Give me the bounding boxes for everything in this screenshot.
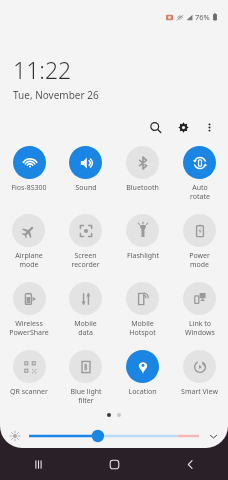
button[interactable]: Airplane mode	[12, 212, 45, 269]
staticText: 76%	[195, 12, 210, 22]
button[interactable]: Location	[126, 348, 159, 397]
button[interactable]: Recents	[0, 448, 76, 480]
staticText: 11:22	[13, 54, 72, 85]
button[interactable]: QR scanner	[10, 348, 48, 397]
button[interactable]: Home	[76, 448, 152, 480]
staticText: Wireless PowerShare	[9, 319, 49, 337]
button[interactable]: Power mode	[183, 212, 216, 269]
button[interactable]: Settings	[172, 116, 194, 138]
button[interactable]: Sound	[69, 144, 102, 193]
button[interactable]: Brightness	[29, 427, 199, 445]
staticText: Mobile Hotspot	[129, 319, 156, 337]
staticText: Sound	[75, 183, 97, 193]
staticText: Screen recorder	[71, 251, 100, 269]
staticText: Blue light filter	[70, 387, 102, 405]
staticText: QR scanner	[10, 387, 48, 397]
button[interactable]: Bluetooth	[126, 144, 159, 193]
button[interactable]: Smart View	[181, 348, 218, 397]
button[interactable]: Search	[144, 116, 166, 138]
button[interactable]: Blue light filter	[69, 348, 102, 405]
button[interactable]: Wireless PowerShare	[9, 280, 49, 337]
staticText: Fios-8S300	[11, 183, 47, 193]
button[interactable]: Flashlight	[126, 212, 159, 261]
button[interactable]: Mobile data	[69, 280, 102, 337]
button[interactable]: Screen recorder	[69, 212, 102, 269]
staticText: Flashlight	[127, 251, 159, 261]
staticText: Auto rotate	[190, 183, 210, 201]
staticText: Link to Windows	[185, 319, 215, 337]
button[interactable]: Auto rotate	[183, 144, 216, 201]
button[interactable]: Fios-8S300	[11, 144, 47, 193]
staticText: Power mode	[189, 251, 210, 269]
button[interactable]: Link to Windows	[183, 280, 216, 337]
button[interactable]: Expand	[205, 428, 221, 444]
button[interactable]: Mobile Hotspot	[126, 280, 159, 337]
button[interactable]: Back	[152, 448, 228, 480]
staticText: Mobile data	[74, 319, 97, 337]
staticText: Tue, November 26	[13, 88, 99, 102]
staticText: Airplane mode	[15, 251, 43, 269]
staticText: Smart View	[181, 387, 218, 397]
staticText: Location	[128, 387, 157, 397]
staticText: Bluetooth	[126, 183, 159, 193]
button[interactable]: More options	[198, 116, 220, 138]
